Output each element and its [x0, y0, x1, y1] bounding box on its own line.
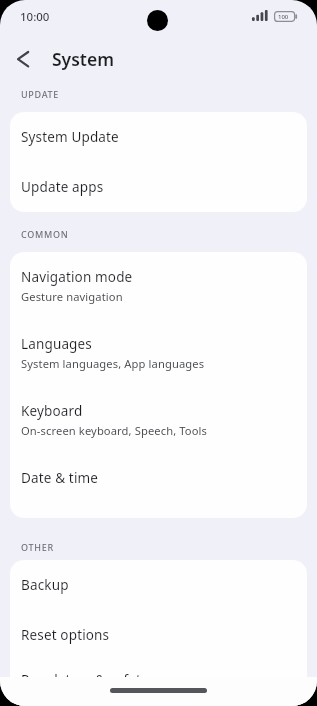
staticText: On-screen keyboard, Speech, Tools: [21, 423, 208, 438]
staticText: Gesture navigation: [21, 289, 123, 304]
button[interactable]: Languages: [10, 319, 307, 386]
button[interactable]: Update apps: [10, 162, 307, 212]
staticText: Regulatory & safety: [21, 671, 149, 689]
staticText: System Update: [21, 128, 119, 146]
staticText: System: [52, 47, 114, 71]
staticText: Keyboard: [21, 402, 83, 420]
button[interactable]: System Update: [10, 112, 307, 162]
staticText: Date & time: [21, 469, 99, 487]
button[interactable]: Reset options: [10, 610, 307, 660]
button[interactable]: Keyboard: [10, 386, 307, 453]
staticText: 100: [278, 13, 289, 21]
staticText: UPDATE: [21, 88, 60, 100]
staticText: COMMON: [21, 228, 69, 240]
staticText: Languages: [21, 335, 92, 353]
staticText: System languages, App languages: [21, 356, 205, 371]
staticText: 10:00: [20, 9, 50, 25]
button[interactable]: Regulatory & safety: [10, 660, 307, 706]
staticText: Reset options: [21, 626, 110, 644]
button[interactable]: Backup: [10, 560, 307, 610]
button[interactable]: [10, 46, 36, 72]
staticText: Update apps: [21, 178, 104, 196]
staticText: OTHER: [21, 541, 54, 553]
button[interactable]: Date & time: [10, 453, 307, 503]
staticText: Backup: [21, 576, 69, 594]
button[interactable]: Navigation mode: [10, 252, 307, 319]
staticText: Navigation mode: [21, 268, 133, 286]
